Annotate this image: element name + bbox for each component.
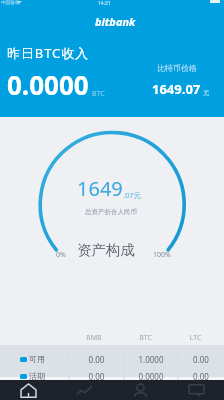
staticText: 中国移动 — [1, 0, 20, 6]
staticText: 可用 — [29, 354, 45, 364]
staticText: 比特币价格 — [157, 63, 197, 73]
staticText: 1649 — [77, 175, 123, 202]
staticText: 活期 — [29, 371, 45, 381]
staticText: 昨日BTC收入 — [7, 44, 89, 62]
button[interactable]: 活期 — [0, 368, 224, 384]
staticText: LTC — [172, 333, 219, 343]
staticText: 资产构成 — [77, 241, 135, 259]
button[interactable]: Home — [0, 380, 56, 400]
staticText: 0% — [56, 250, 66, 260]
button[interactable]: Account — [112, 380, 168, 400]
button[interactable]: 可用 — [0, 351, 224, 367]
staticText: BTC — [92, 89, 105, 99]
staticText: 0.0000 — [7, 67, 89, 102]
staticText: bitbank — [95, 14, 136, 29]
staticText: 元 — [203, 89, 210, 97]
staticText: 1.0000 — [124, 354, 178, 365]
staticText: 100% — [153, 250, 171, 260]
staticText: 0.00 — [69, 371, 124, 382]
staticText: 14:21 — [98, 0, 111, 7]
staticText: 1649.07 — [152, 80, 201, 98]
staticText: 0.00 — [69, 354, 124, 365]
staticText: 0.00 — [178, 354, 224, 365]
staticText: BTC — [119, 333, 172, 343]
staticText: 总资产折合人民币 — [85, 208, 137, 216]
staticText: RMB — [69, 333, 119, 343]
staticText: 0.00 — [178, 371, 224, 382]
staticText: .07元 — [123, 190, 142, 200]
staticText: 0.0000 — [124, 371, 178, 382]
button[interactable]: Markets — [56, 380, 112, 400]
button[interactable]: Messages — [168, 380, 224, 400]
